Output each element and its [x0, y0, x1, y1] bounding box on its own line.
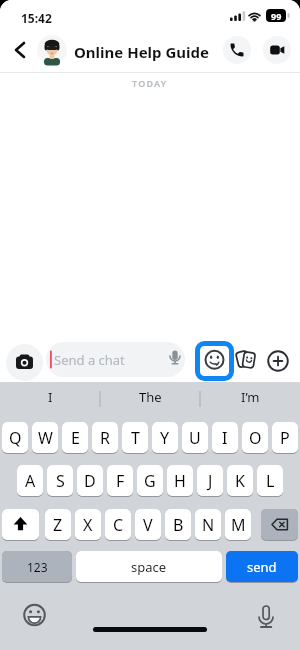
staticText: K: [235, 470, 245, 492]
button[interactable]: [2, 509, 39, 541]
button[interactable]: [6, 36, 34, 64]
button[interactable]: H: [167, 465, 193, 497]
staticText: Y: [160, 427, 170, 449]
button[interactable]: B: [165, 509, 191, 541]
button[interactable]: F: [107, 465, 133, 497]
staticText: A: [25, 470, 36, 492]
button[interactable]: [37, 35, 67, 65]
button[interactable]: I: [0, 384, 100, 410]
button[interactable]: O: [242, 422, 268, 454]
button[interactable]: J: [197, 465, 223, 497]
staticText: send: [247, 558, 277, 576]
button[interactable]: 123: [2, 551, 72, 583]
button[interactable]: Send a chat: [46, 342, 185, 377]
button[interactable]: G: [137, 465, 163, 497]
button[interactable]: [261, 509, 298, 541]
staticText: V: [143, 514, 153, 536]
button[interactable]: send: [226, 551, 298, 583]
staticText: T: [131, 427, 140, 449]
staticText: space: [131, 558, 167, 576]
button[interactable]: Z: [45, 509, 71, 541]
staticText: C: [113, 514, 124, 536]
button[interactable]: L: [257, 465, 283, 497]
staticText: U: [189, 427, 201, 449]
button[interactable]: W: [32, 422, 58, 454]
button[interactable]: T: [122, 422, 148, 454]
button[interactable]: [195, 341, 234, 381]
staticText: 99: [271, 10, 282, 22]
button[interactable]: X: [75, 509, 101, 541]
button[interactable]: Q: [2, 422, 28, 454]
button[interactable]: space: [76, 551, 222, 583]
staticText: The: [139, 388, 162, 406]
staticText: Q: [9, 427, 22, 449]
staticText: I: [222, 427, 228, 449]
button[interactable]: D: [77, 465, 103, 497]
staticText: X: [83, 514, 93, 536]
staticText: Online Help Guide: [74, 42, 209, 62]
button[interactable]: [6, 344, 43, 381]
staticText: W: [38, 427, 53, 449]
staticText: Z: [53, 514, 63, 536]
button[interactable]: V: [135, 509, 161, 541]
button[interactable]: [22, 602, 47, 628]
staticText: N: [202, 514, 215, 536]
button[interactable]: P: [272, 422, 298, 454]
button[interactable]: I: [212, 422, 238, 454]
staticText: I: [48, 388, 53, 406]
staticText: TODAY: [132, 77, 168, 89]
staticText: H: [174, 470, 186, 492]
button[interactable]: S: [47, 465, 73, 497]
staticText: D: [84, 470, 96, 492]
staticText: Send a chat: [54, 351, 125, 369]
button[interactable]: A: [17, 465, 43, 497]
button[interactable]: [234, 346, 258, 376]
button[interactable]: E: [62, 422, 88, 454]
button[interactable]: U: [182, 422, 208, 454]
staticText: P: [280, 427, 290, 449]
staticText: S: [56, 470, 65, 492]
staticText: I’m: [241, 388, 260, 406]
staticText: 123: [27, 559, 48, 575]
button[interactable]: R: [92, 422, 118, 454]
button[interactable]: [223, 36, 251, 64]
button[interactable]: K: [227, 465, 253, 497]
button[interactable]: I’m: [200, 384, 300, 410]
staticText: B: [173, 514, 184, 536]
staticText: J: [208, 470, 213, 492]
staticText: O: [249, 427, 262, 449]
staticText: E: [71, 427, 80, 449]
button[interactable]: N: [195, 509, 221, 541]
button[interactable]: M: [225, 509, 251, 541]
staticText: R: [100, 427, 110, 449]
button[interactable]: C: [105, 509, 131, 541]
button[interactable]: The: [100, 384, 200, 410]
staticText: M: [231, 514, 246, 536]
button[interactable]: [267, 350, 289, 372]
staticText: L: [266, 470, 275, 492]
staticText: F: [116, 470, 125, 492]
staticText: G: [144, 470, 156, 492]
button[interactable]: [254, 601, 278, 629]
button[interactable]: Y: [152, 422, 178, 454]
button[interactable]: [263, 36, 291, 64]
staticText: 15:42: [21, 10, 52, 26]
